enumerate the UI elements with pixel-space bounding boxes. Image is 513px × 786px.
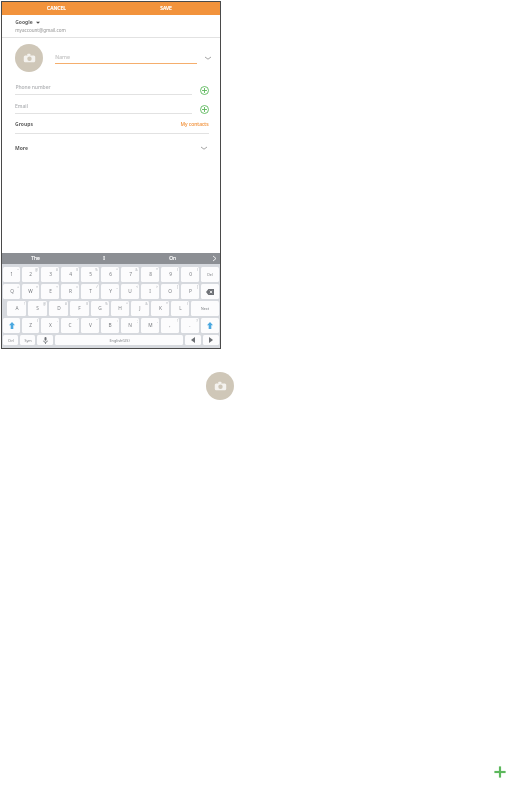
button[interactable]: English(US): [55, 335, 183, 345]
button[interactable]: O: [161, 284, 179, 299]
staticText: Sym: [24, 338, 32, 343]
button[interactable]: T: [81, 284, 99, 299]
button[interactable]: J: [131, 301, 149, 316]
button[interactable]: X: [41, 318, 59, 333]
button[interactable]: F: [70, 301, 89, 316]
button[interactable]: 0: [181, 267, 199, 282]
staticText: >: [156, 285, 158, 289]
staticText: English(US): [109, 338, 130, 343]
button[interactable]: Right: [203, 335, 219, 345]
button[interactable]: Voice input: [37, 335, 53, 345]
button[interactable]: Add Phone number: [200, 86, 209, 95]
staticText: SAVE: [160, 5, 172, 12]
button[interactable]: ,: [161, 318, 179, 333]
button[interactable]: .: [181, 318, 199, 333]
button[interactable]: Q: [3, 284, 20, 299]
button[interactable]: 8: [141, 267, 159, 282]
button[interactable]: I: [141, 284, 159, 299]
button[interactable]: M: [141, 318, 159, 333]
button[interactable]: More suggestions: [207, 253, 221, 264]
staticText: ,: [157, 319, 158, 323]
staticText: O: [168, 288, 172, 295]
staticText: The: [31, 255, 40, 262]
staticText: <: [136, 285, 138, 289]
button[interactable]: Google: [1, 15, 221, 37]
button[interactable]: 7: [121, 267, 139, 282]
staticText: ,: [169, 322, 171, 329]
staticText: !: [24, 302, 25, 306]
staticText: ): [37, 319, 38, 323]
staticText: ÷: [56, 285, 58, 289]
staticText: G: [98, 305, 102, 312]
button[interactable]: R: [61, 284, 79, 299]
staticText: CANCEL: [47, 5, 66, 12]
staticText: 3: [49, 271, 52, 278]
button[interactable]: Email: [15, 103, 192, 114]
staticText: W: [28, 288, 33, 295]
button[interactable]: Shift: [3, 318, 20, 333]
button[interactable]: More: [1, 143, 221, 153]
button[interactable]: I: [69, 253, 138, 264]
button[interactable]: P: [181, 284, 199, 299]
button[interactable]: V: [81, 318, 99, 333]
button[interactable]: 1: [3, 267, 20, 282]
button[interactable]: The: [1, 253, 69, 264]
staticText: myaccount@gmail.com: [15, 27, 66, 33]
button[interactable]: 6: [101, 267, 119, 282]
button[interactable]: 2: [22, 267, 39, 282]
staticText: @: [43, 302, 46, 306]
button[interactable]: H: [111, 301, 129, 316]
staticText: ;: [137, 319, 138, 323]
button[interactable]: A: [7, 301, 26, 316]
button[interactable]: D: [49, 301, 68, 316]
button[interactable]: Add photo: [206, 372, 234, 400]
button[interactable]: Ctrl: [3, 335, 18, 345]
button[interactable]: 5: [81, 267, 99, 282]
button[interactable]: Left: [185, 335, 201, 345]
button[interactable]: B: [101, 318, 119, 333]
button[interactable]: U: [121, 284, 139, 299]
button[interactable]: W: [22, 284, 39, 299]
button[interactable]: Expand name: [203, 53, 213, 63]
button[interactable]: Name: [55, 53, 197, 64]
staticText: ^: [116, 268, 118, 272]
button[interactable]: G: [91, 301, 109, 316]
button[interactable]: Next: [191, 301, 219, 316]
staticText: $: [86, 302, 88, 306]
staticText: Y: [109, 288, 112, 295]
staticText: Q: [10, 288, 14, 295]
button[interactable]: N: [121, 318, 139, 333]
button[interactable]: On: [138, 253, 207, 264]
button[interactable]: C: [61, 318, 79, 333]
button[interactable]: L: [171, 301, 189, 316]
staticText: V: [89, 322, 92, 329]
staticText: _: [116, 285, 118, 289]
button[interactable]: Phone number: [15, 84, 192, 95]
button[interactable]: Add Email: [200, 105, 209, 114]
button[interactable]: Del: [201, 267, 219, 282]
staticText: &: [145, 302, 148, 306]
staticText: 1: [10, 271, 13, 278]
button[interactable]: E: [41, 284, 59, 299]
button[interactable]: Add contact: [487, 759, 512, 784]
button[interactable]: Contact photo: [15, 44, 43, 72]
button[interactable]: S: [28, 301, 47, 316]
button[interactable]: 9: [161, 267, 179, 282]
staticText: L: [179, 305, 182, 312]
staticText: U: [128, 288, 132, 295]
button[interactable]: Shift: [201, 318, 219, 333]
button[interactable]: 3: [41, 267, 59, 282]
staticText: P: [189, 288, 192, 295]
button[interactable]: 4: [61, 267, 79, 282]
staticText: 7: [129, 271, 132, 278]
button[interactable]: CANCEL: [1, 1, 111, 15]
button[interactable]: Z: [22, 318, 39, 333]
button[interactable]: Groups: [1, 121, 221, 128]
button[interactable]: Backspace: [201, 284, 219, 299]
button[interactable]: Sym: [20, 335, 35, 345]
button[interactable]: SAVE: [111, 1, 221, 15]
staticText: More: [15, 145, 28, 152]
button[interactable]: Y: [101, 284, 119, 299]
button[interactable]: K: [151, 301, 169, 316]
